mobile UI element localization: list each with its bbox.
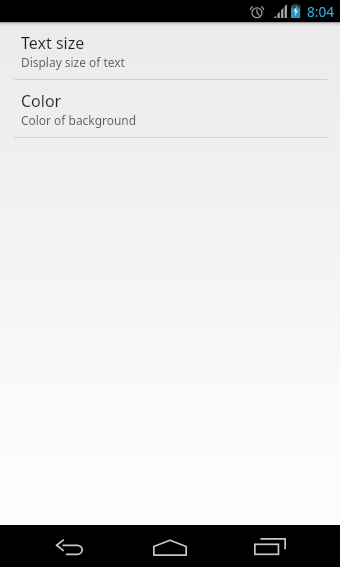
staticText: 8:04: [307, 2, 334, 21]
button[interactable]: Color: [0, 80, 340, 138]
staticText: Display size of text: [21, 54, 125, 70]
button[interactable]: Text size: [0, 22, 340, 80]
button[interactable]: Back: [41, 526, 101, 567]
staticText: Text size: [21, 32, 85, 54]
button[interactable]: Recent apps: [240, 526, 300, 567]
button[interactable]: Home: [140, 526, 200, 567]
staticText: Color: [21, 90, 62, 112]
staticText: Color of background: [21, 112, 137, 128]
